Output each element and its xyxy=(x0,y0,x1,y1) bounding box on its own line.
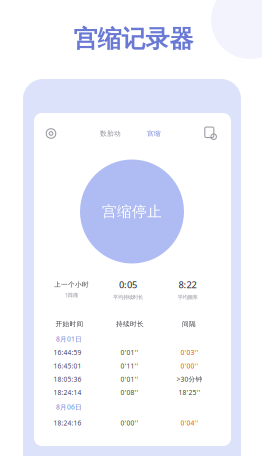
staticText: 18:24:14 xyxy=(53,388,81,397)
staticText: 1阵痛 xyxy=(65,292,78,299)
staticText: 间隔 xyxy=(182,320,196,328)
staticText: 宫缩停止 xyxy=(102,202,162,220)
staticText: 8月01日 xyxy=(56,335,82,343)
staticText: 16:44:59 xyxy=(53,348,81,357)
button[interactable]: 18:05:36 xyxy=(34,373,231,386)
button[interactable]: 宫缩停止 xyxy=(79,159,184,263)
staticText: 持续时长 xyxy=(116,320,144,328)
staticText: 18:05:36 xyxy=(53,375,81,384)
staticText: 宫缩 xyxy=(147,129,161,138)
staticText: 18'25'' xyxy=(178,388,200,397)
staticText: 8月06日 xyxy=(56,403,82,411)
staticText: 0'04'' xyxy=(180,419,198,427)
staticText: 0'00'' xyxy=(120,419,138,427)
staticText: 0'00'' xyxy=(180,361,198,370)
staticText: 0:05 xyxy=(119,278,137,291)
button[interactable]: 记录 xyxy=(199,122,221,144)
button[interactable]: 16:44:59 xyxy=(34,346,231,359)
staticText: 18:24:16 xyxy=(53,419,81,427)
staticText: >30分钟 xyxy=(176,375,202,384)
button[interactable]: 16:45:01 xyxy=(34,359,231,372)
button[interactable]: 数胎动 xyxy=(90,123,130,143)
staticText: 0'01'' xyxy=(120,375,138,384)
staticText: 8:22 xyxy=(178,278,196,291)
staticText: 0'01'' xyxy=(120,348,138,357)
staticText: 开始时间 xyxy=(55,320,83,328)
button[interactable]: 18:24:16 xyxy=(34,416,231,429)
staticText: 0'03'' xyxy=(180,348,198,357)
button[interactable]: 18:24:14 xyxy=(34,386,231,399)
button[interactable]: 设置 xyxy=(40,122,62,144)
staticText: 平均频率 xyxy=(177,294,197,300)
button[interactable]: 宫缩 xyxy=(139,123,169,143)
staticText: 0'11'' xyxy=(120,361,138,370)
staticText: 平均持续时长 xyxy=(113,294,143,300)
staticText: 数胎动 xyxy=(100,129,121,138)
staticText: 16:45:01 xyxy=(53,361,81,370)
staticText: 0'08'' xyxy=(120,388,138,397)
staticText: 宫缩记录器 xyxy=(73,24,193,54)
staticText: 上一个小时 xyxy=(54,280,89,289)
